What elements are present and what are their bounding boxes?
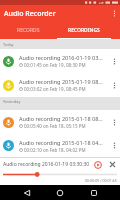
button[interactable]: Audio recording 2015-01-19 08... [0, 73, 120, 97]
staticText: 00:03:02 on Feb 19, 08:45 PM [24, 86, 86, 92]
staticText: Audio recording 2015-01-18 04... [19, 139, 103, 146]
button[interactable]: Recents [87, 186, 101, 200]
button[interactable]: Play [91, 158, 105, 171]
staticText: 00:02:10 on Feb 18, 04:02 PM [24, 147, 86, 153]
staticText: Audio recording 2015-01-19 08... [19, 78, 103, 85]
button[interactable]: Audio recording 2015-01-18 08... [0, 110, 120, 134]
button[interactable]: Item options [108, 73, 120, 97]
staticText: RECORDS [17, 27, 40, 34]
button[interactable]: Back [20, 186, 34, 200]
button[interactable]: Audio recording 2016-01-19 03... [0, 49, 120, 73]
button[interactable]: RECORDINGS [57, 22, 111, 39]
button[interactable]: Item options [108, 49, 120, 73]
button[interactable]: Item options [108, 110, 120, 134]
button[interactable]: Audio recording 2015-01-18 04... [0, 134, 120, 157]
staticText: Audio recording 2016-01-19 03... [19, 54, 103, 61]
button[interactable]: Close [105, 158, 119, 171]
staticText: Audio Recorder [4, 9, 56, 19]
staticText: 00:05:40 on Feb 18, 05:15 PM [24, 123, 86, 129]
staticText: 00:01:45 on Feb 19, 08:30 PM [24, 62, 86, 68]
staticText: Audio recording 2016-01-19 03:30:30 [3, 161, 91, 168]
staticText: Yesterday [3, 99, 21, 104]
staticText: Today [3, 42, 14, 47]
staticText: 00:00:05 / 00:01:45 [85, 178, 117, 183]
button[interactable]: Home [53, 186, 67, 200]
staticText: Audio recording 2015-01-18 08... [19, 115, 103, 122]
button[interactable]: Item options [108, 134, 120, 157]
button[interactable]: RECORDS [0, 22, 57, 39]
staticText: RECORDINGS [68, 27, 100, 34]
button[interactable]: More options [108, 5, 120, 22]
